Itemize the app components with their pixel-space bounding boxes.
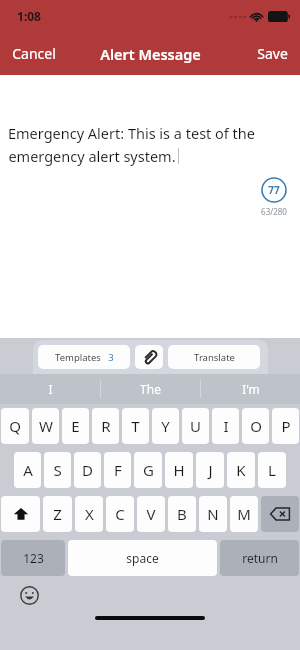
button[interactable]: L <box>258 452 286 488</box>
staticText: K <box>236 460 246 480</box>
staticText: Translate <box>194 351 235 364</box>
button[interactable]: G <box>134 452 162 488</box>
button[interactable]: Cancel <box>0 36 68 71</box>
staticText: V <box>146 504 156 524</box>
staticText: I <box>48 381 53 397</box>
button[interactable]: S <box>44 452 71 488</box>
button[interactable]: T <box>122 408 149 444</box>
button[interactable]: F <box>104 452 131 488</box>
staticText: B <box>177 504 187 524</box>
button[interactable]: I <box>0 374 100 404</box>
button[interactable]: E <box>62 408 89 444</box>
button[interactable]: O <box>242 408 269 444</box>
button[interactable]: Z <box>43 496 72 532</box>
staticText: 63/280 <box>261 206 287 217</box>
staticText: G <box>143 460 154 480</box>
staticText: N <box>207 504 219 524</box>
staticText: Templates <box>55 351 101 364</box>
staticText: L <box>268 460 276 480</box>
staticText: C <box>115 504 125 524</box>
staticText: Cancel <box>12 44 56 63</box>
button[interactable]: Save <box>245 36 300 71</box>
button[interactable]: 123 <box>1 540 65 576</box>
staticText: 3 <box>108 351 114 364</box>
staticText: U <box>190 416 201 436</box>
staticText: O <box>250 416 262 436</box>
button[interactable]: Y <box>152 408 179 444</box>
staticText: Save <box>257 44 288 63</box>
button[interactable]: P <box>272 408 299 444</box>
staticText: M <box>237 504 251 524</box>
button[interactable]: H <box>165 452 193 488</box>
staticText: 77 <box>268 183 280 197</box>
staticText: Y <box>161 416 170 436</box>
button[interactable]: K <box>227 452 255 488</box>
staticText: T <box>131 416 140 436</box>
staticText: S <box>53 460 62 480</box>
staticText: I'm <box>242 381 260 397</box>
staticText: H <box>173 460 185 480</box>
button[interactable]: Shift <box>1 496 40 532</box>
staticText: The <box>140 381 161 397</box>
staticText: R <box>101 416 111 436</box>
button[interactable]: M <box>230 496 258 532</box>
staticText: J <box>208 460 213 480</box>
staticText: Z <box>53 504 62 524</box>
button[interactable]: space <box>68 540 217 576</box>
staticText: emergency alert system. <box>8 146 176 166</box>
staticText: P <box>281 416 291 436</box>
staticText: return <box>242 550 278 566</box>
button[interactable]: Attach file <box>135 345 163 369</box>
button[interactable]: Backspace <box>261 496 299 532</box>
staticText: E <box>71 416 80 436</box>
button[interactable]: N <box>199 496 227 532</box>
button[interactable]: V <box>137 496 165 532</box>
button[interactable]: R <box>92 408 119 444</box>
button[interactable]: W <box>32 408 59 444</box>
staticText: space <box>126 550 159 566</box>
staticText: 123 <box>23 550 44 566</box>
button[interactable]: I <box>212 408 239 444</box>
staticText: I <box>223 416 229 436</box>
button[interactable]: D <box>74 452 101 488</box>
button[interactable]: B <box>168 496 196 532</box>
staticText: D <box>82 460 93 480</box>
staticText: 1:08 <box>17 8 41 24</box>
staticText: W <box>39 416 53 436</box>
staticText: A <box>23 460 33 480</box>
button[interactable]: Templates <box>38 345 130 369</box>
button[interactable]: Translate <box>168 345 260 369</box>
staticText: Emergency Alert: This is a test of the <box>8 123 255 143</box>
button[interactable]: C <box>106 496 134 532</box>
button[interactable]: return <box>220 540 299 576</box>
staticText: X <box>85 504 94 524</box>
button[interactable]: Emoji keyboard <box>18 584 40 606</box>
button[interactable]: J <box>196 452 224 488</box>
button[interactable]: I'm <box>201 374 300 404</box>
button[interactable]: Q <box>1 408 29 444</box>
staticText: F <box>114 460 122 480</box>
button[interactable]: X <box>75 496 103 532</box>
button[interactable]: U <box>182 408 209 444</box>
staticText: Alert Message <box>100 44 201 64</box>
staticText: Q <box>9 416 21 436</box>
button[interactable]: The <box>101 374 200 404</box>
button[interactable]: A <box>14 452 41 488</box>
